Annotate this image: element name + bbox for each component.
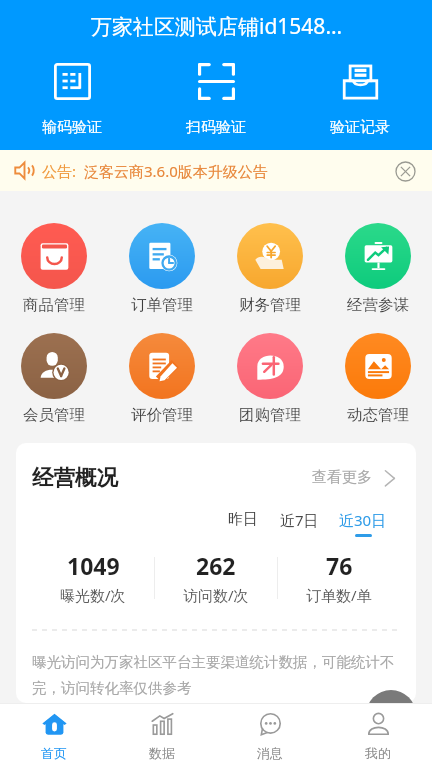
staticText: 订单管理	[131, 295, 193, 315]
staticText: 输码验证	[42, 118, 102, 137]
button[interactable]: 财务管理	[216, 223, 324, 315]
button[interactable]: 首页	[0, 704, 108, 768]
staticText: 近30日	[339, 510, 387, 530]
staticText: 经营概况	[32, 464, 118, 491]
button[interactable]: 消息	[216, 704, 324, 768]
button[interactable]: 评价管理	[108, 333, 216, 425]
staticText: 访问数/次	[183, 585, 249, 605]
button[interactable]: Scroll to top	[366, 690, 416, 740]
staticText: 会员管理	[23, 405, 85, 425]
staticText: 订单数/单	[306, 585, 372, 605]
button[interactable]: 输码验证	[0, 63, 144, 137]
staticText: 昨日	[228, 510, 258, 529]
button[interactable]: 扫码验证	[144, 63, 288, 137]
staticText: 262	[196, 550, 236, 581]
button[interactable]: 数据	[108, 704, 216, 768]
staticText: 1049	[67, 550, 120, 581]
staticText: 首页	[41, 745, 67, 761]
button[interactable]: 团购管理	[216, 333, 324, 425]
button[interactable]: 近7日	[280, 510, 319, 537]
button[interactable]: 近30日	[339, 510, 387, 537]
button[interactable]: 查看更多	[312, 468, 398, 487]
staticText: 团购管理	[239, 405, 301, 425]
staticText: 动态管理	[347, 405, 409, 425]
staticText: 万家社区测试店铺id1548…	[91, 12, 342, 41]
button[interactable]: 会员管理	[0, 333, 108, 425]
staticText: 经营参谋	[347, 295, 409, 315]
button[interactable]: 验证记录	[288, 63, 432, 137]
button[interactable]: 昨日	[228, 510, 258, 536]
button[interactable]: 商品管理	[0, 223, 108, 315]
staticText: 曝光数/次	[60, 585, 126, 605]
staticText: 泛客云商3.6.0版本升级公告	[84, 161, 268, 181]
staticText: 数据	[149, 745, 175, 761]
staticText: 查看更多	[312, 468, 372, 487]
staticText: 消息	[257, 745, 283, 761]
staticText: 近7日	[280, 510, 319, 530]
staticText: 评价管理	[131, 405, 193, 425]
button[interactable]: 订单管理	[108, 223, 216, 315]
button[interactable]: Close notice	[394, 160, 416, 182]
staticText: 我的	[365, 745, 391, 761]
staticText: 76	[326, 550, 353, 581]
staticText: 验证记录	[330, 118, 390, 137]
staticText: 扫码验证	[186, 118, 246, 137]
button[interactable]: 经营参谋	[324, 223, 432, 315]
button[interactable]: 我的	[324, 704, 432, 768]
staticText: 财务管理	[239, 295, 301, 315]
staticText: 曝光访问为万家社区平台主要渠道统计数据，可能统计不完，访问转化率仅供参考	[32, 653, 400, 698]
staticText: 公告:	[42, 161, 77, 181]
button[interactable]: 动态管理	[324, 333, 432, 425]
staticText: 商品管理	[23, 295, 85, 315]
